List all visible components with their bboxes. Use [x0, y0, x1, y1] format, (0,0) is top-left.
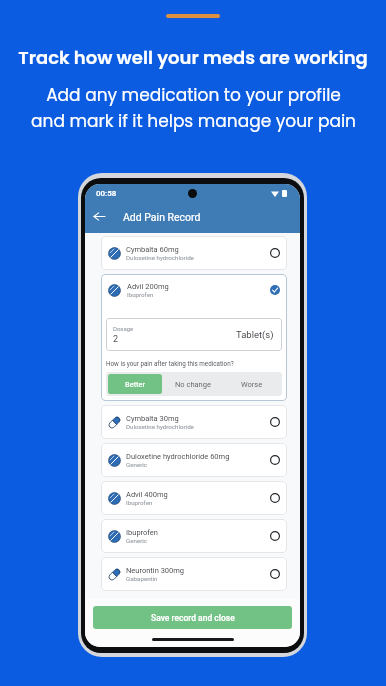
staticText: Dosage: [113, 325, 134, 332]
staticText: Advil 200mg: [127, 282, 169, 291]
button[interactable]: Duloxetine hydrochloride 60mg: [101, 443, 287, 477]
button[interactable]: Cymbalta 30mg: [101, 405, 287, 439]
button[interactable]: Cymbalta 60mg: [101, 236, 287, 270]
staticText: How is your pain after taking this medic…: [106, 360, 234, 367]
button[interactable]: Advil 400mg: [101, 481, 287, 515]
staticText: Ibuprofen: [126, 528, 158, 537]
button[interactable]: Neurontin 300mg: [101, 557, 287, 591]
button[interactable]: Worse: [224, 374, 280, 394]
staticText: Ibuprofen: [126, 499, 153, 506]
staticText: Duloxetine hydrochloride: [126, 254, 194, 261]
staticText: Cymbalta 60mg: [126, 245, 179, 254]
staticText: Worse: [241, 380, 263, 389]
staticText: Generic: [126, 537, 148, 544]
staticText: Better: [125, 380, 146, 389]
staticText: Duloxetine hydrochloride: [126, 423, 194, 430]
staticText: Ibuprofen: [127, 291, 154, 298]
staticText: Tablet(s): [236, 329, 274, 340]
staticText: Save record and close: [151, 613, 235, 623]
staticText: Neurontin 300mg: [126, 566, 185, 575]
staticText: No change: [175, 380, 211, 389]
staticText: 2: [113, 334, 119, 345]
button[interactable]: Save record and close: [93, 606, 292, 629]
staticText: Cymbalta 30mg: [126, 414, 179, 423]
button[interactable]: Ibuprofen: [101, 519, 287, 553]
staticText: Track how well your meds are working: [18, 45, 368, 70]
button[interactable]: Better: [108, 374, 162, 394]
staticText: Add Pain Record: [123, 211, 201, 223]
button[interactable]: Advil 200mg: [101, 274, 287, 401]
button[interactable]: Back: [85, 200, 114, 233]
button[interactable]: No change: [162, 374, 224, 394]
staticText: 00:58: [96, 189, 117, 198]
staticText: Advil 400mg: [126, 490, 168, 499]
staticText: Generic: [126, 461, 148, 468]
staticText: Add any medication to your profile and m…: [31, 83, 356, 133]
staticText: Gabapentin: [126, 575, 158, 582]
staticText: Duloxetine hydrochloride 60mg: [126, 452, 230, 461]
